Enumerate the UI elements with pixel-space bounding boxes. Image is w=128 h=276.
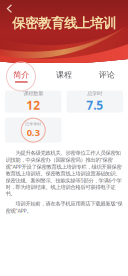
button[interactable]: 简介 (0, 70, 43, 83)
staticText: 为提升各级党政机关、涉密单位工作人员保密知识技能，中央保密办（国家保密局）推出的… (5, 150, 121, 197)
staticText: 评论 (99, 70, 115, 80)
staticText: 课程数量 (23, 90, 43, 97)
staticText: 培训开始前，请在各手机应用商店下载最新版“保密观”APP。 (5, 200, 122, 214)
staticText: 12 (26, 97, 40, 113)
staticText: 0.3 (27, 126, 40, 138)
staticText: 课程 (56, 70, 72, 80)
staticText: 简介 (13, 70, 29, 80)
staticText: 7.5 (86, 97, 103, 113)
staticText: 总学时 (87, 90, 102, 97)
button[interactable]: 课程 (43, 70, 85, 83)
button[interactable]: Back (2, 2, 17, 15)
button[interactable]: 评论 (85, 70, 128, 83)
staticText: 已学学时 (25, 122, 41, 127)
staticText: 保密教育线上培训 (12, 15, 116, 31)
